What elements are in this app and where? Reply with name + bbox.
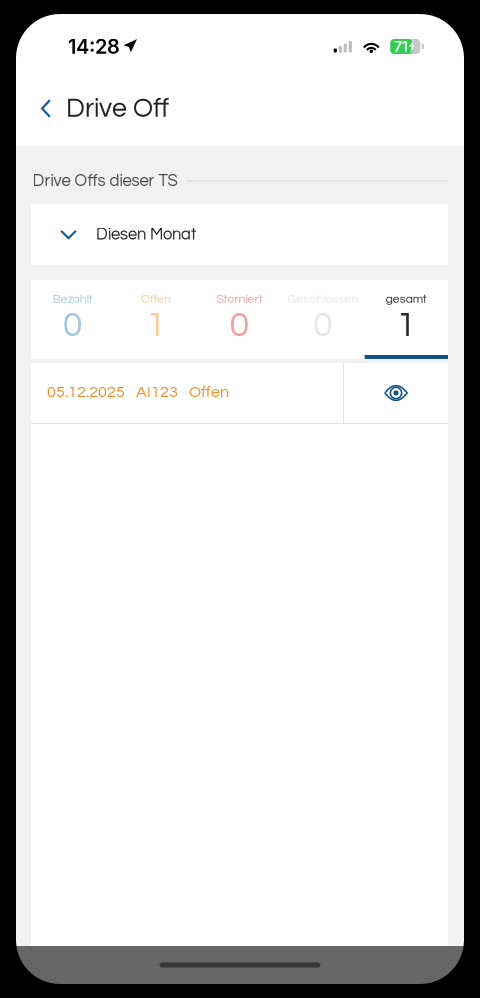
staticText: Offen <box>189 384 229 400</box>
staticText: Geschlossen <box>287 293 358 305</box>
staticText: Storniert <box>216 293 262 305</box>
staticText: 05.12.2025 <box>47 384 125 400</box>
button[interactable]: 05.12.2025 <box>31 363 343 423</box>
button[interactable]: Zurück <box>16 73 185 144</box>
staticText: 0 <box>229 306 249 343</box>
staticText: Offen <box>141 293 171 305</box>
staticText: 0 <box>63 306 83 343</box>
staticText: Drive Off <box>66 95 169 122</box>
staticText: gesamt <box>386 293 427 305</box>
staticText: AI123 <box>136 384 178 400</box>
staticText: 1 <box>146 306 166 343</box>
staticText: 0 <box>313 306 333 343</box>
staticText: 1 <box>396 306 416 343</box>
staticText: 14:28 <box>68 34 120 59</box>
staticText: Drive Offs dieser TS <box>32 172 177 190</box>
button[interactable]: Diesen Monat <box>31 204 448 265</box>
button[interactable]: Drive Off anzeigen <box>344 363 448 423</box>
staticText: Diesen Monat <box>96 226 196 243</box>
staticText: 71 <box>394 38 408 55</box>
staticText: Bezahlt <box>53 293 93 305</box>
